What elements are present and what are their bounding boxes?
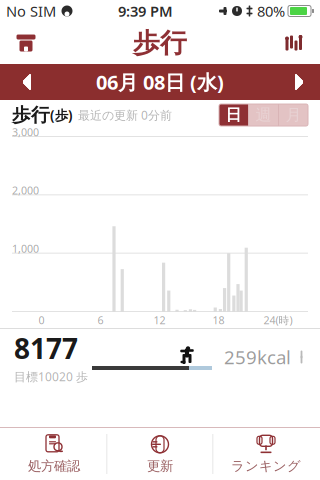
staticText: No SIM (6, 1, 56, 21)
staticText: 歩行 (12, 103, 50, 126)
button[interactable]: 日 (219, 104, 248, 126)
staticText: 3,000 (12, 125, 39, 139)
staticText: 18 (212, 313, 224, 327)
button[interactable]: ランキング (213, 428, 318, 480)
button[interactable]: ホーム (0, 22, 52, 64)
button[interactable]: 週 (249, 104, 278, 126)
staticText: 歩行 (133, 27, 187, 59)
staticText: 目標10020 歩 (14, 369, 88, 384)
button[interactable]: 処方確認 (1, 428, 106, 480)
button[interactable]: 次の日 (272, 64, 320, 100)
staticText: 0 (38, 313, 44, 327)
staticText: 12 (153, 313, 165, 327)
staticText: 80% (257, 1, 285, 21)
staticText: 24(時) (263, 313, 292, 327)
staticText: 2,000 (12, 183, 39, 197)
staticText: ランキング (231, 458, 301, 474)
staticText: 更新 (147, 458, 173, 474)
staticText: 9:39 PM (118, 1, 173, 21)
staticText: 06月 08日 (水) (96, 69, 224, 95)
staticText: 処方確認 (28, 458, 80, 474)
staticText: 月 (285, 105, 301, 125)
staticText: 6 (97, 313, 103, 327)
staticText: 1,000 (12, 242, 39, 256)
button[interactable]: グラフ (268, 22, 320, 64)
button[interactable]: 8177 (0, 329, 320, 385)
button[interactable]: 前の日 (0, 64, 48, 100)
staticText: 8177 (14, 329, 78, 367)
staticText: 最近の更新 0分前 (78, 107, 172, 123)
staticText: 週 (255, 105, 271, 125)
button[interactable]: 更新 (107, 428, 212, 480)
staticText: 日 (225, 105, 241, 125)
button[interactable]: 月 (279, 104, 308, 126)
staticText: (歩) (50, 106, 73, 124)
staticText: 259kcal (224, 345, 291, 369)
